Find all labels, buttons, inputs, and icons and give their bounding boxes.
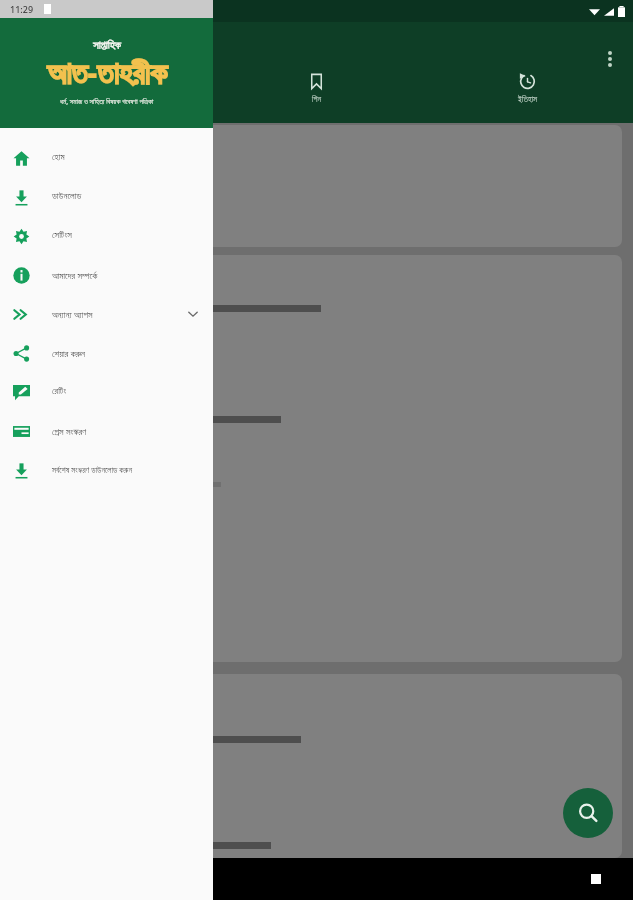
staticText: প্রেস সংস্করণ [52, 425, 213, 437]
staticText: শেয়ার করুন [52, 347, 213, 359]
button[interactable]: More options [593, 42, 627, 76]
button[interactable]: শেয়ার করুন [0, 333, 213, 372]
button[interactable]: রেটিং [0, 372, 213, 411]
button[interactable]: আমাদের সম্পর্কে [0, 255, 213, 294]
staticText: ম্যাগাজিন [94, 96, 117, 104]
button[interactable]: সর্বশেষ সংস্করণ ডাউনলোড করুন [0, 450, 213, 489]
staticText: সর্বশেষ সংস্করণ ডাউনলোড করুন [52, 464, 213, 475]
button[interactable] [11, 125, 622, 247]
button[interactable]: ইতিহাস [422, 65, 633, 104]
staticText: হোম [52, 153, 213, 162]
staticText: ইতিহাস [518, 96, 538, 104]
staticText: সাপ্তাহিক [93, 40, 121, 51]
staticText: আত-তাহরীক [47, 52, 167, 93]
staticText: 11:29 [10, 3, 34, 15]
button[interactable]: Search [563, 788, 613, 838]
button[interactable]: হোম [0, 138, 213, 177]
staticText: ধর্ম, সমাজ ও সাহিত্য বিষয়ক গবেষণা পত্রি… [60, 97, 154, 107]
button[interactable]: ডাউনলোড [0, 177, 213, 216]
staticText: সেটিংস [52, 231, 213, 240]
button[interactable]: Recent apps [583, 866, 609, 892]
button[interactable]: সেটিংস [0, 216, 213, 255]
button[interactable] [11, 255, 622, 662]
staticText: পিন [312, 96, 322, 104]
button[interactable]: অন্যান্য অ্যাপস [0, 294, 213, 333]
staticText: ডাউনলোড [52, 192, 213, 201]
button[interactable]: পিন [211, 65, 422, 104]
staticText: রেটিং [52, 387, 213, 396]
button[interactable] [11, 674, 622, 858]
staticText: আমাদের সম্পর্কে [52, 269, 213, 281]
button[interactable]: ম্যাগাজিন [0, 65, 211, 104]
staticText: অন্যান্য অ্যাপস [52, 308, 187, 320]
button[interactable]: প্রেস সংস্করণ [0, 411, 213, 450]
